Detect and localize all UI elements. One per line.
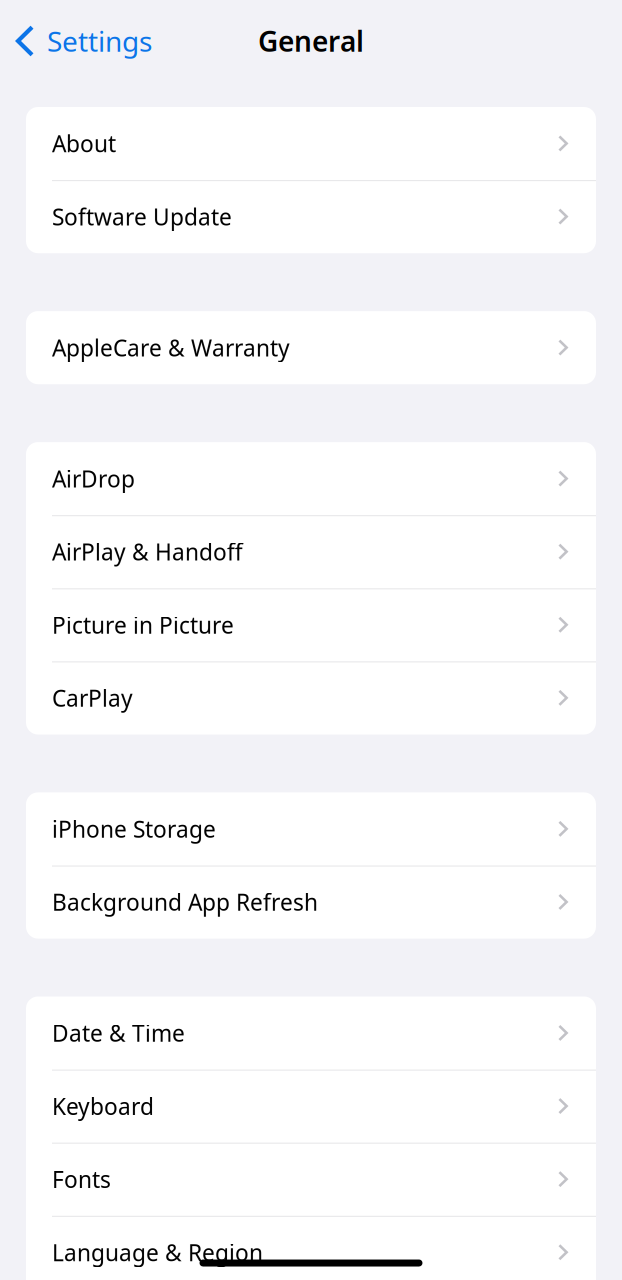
staticText: iPhone Storage: [52, 814, 216, 844]
staticText: Picture in Picture: [52, 610, 234, 640]
staticText: AppleCare & Warranty: [52, 333, 290, 363]
staticText: CarPlay: [52, 683, 133, 713]
button[interactable]: Picture in Picture: [26, 588, 596, 661]
button[interactable]: AppleCare & Warranty: [26, 311, 596, 384]
button[interactable]: Language & Region: [26, 1216, 596, 1280]
button[interactable]: AirPlay & Handoff: [26, 515, 596, 588]
button[interactable]: Settings: [0, 12, 152, 70]
button[interactable]: About: [26, 107, 596, 180]
staticText: Software Update: [52, 202, 232, 232]
button[interactable]: Fonts: [26, 1143, 596, 1216]
staticText: About: [52, 128, 116, 159]
button[interactable]: iPhone Storage: [26, 792, 596, 865]
button[interactable]: Software Update: [26, 180, 596, 253]
button[interactable]: Keyboard: [26, 1070, 596, 1143]
button[interactable]: AirDrop: [26, 442, 596, 515]
staticText: Background App Refresh: [52, 887, 318, 917]
button[interactable]: Background App Refresh: [26, 865, 596, 939]
button[interactable]: Date & Time: [26, 996, 596, 1070]
button[interactable]: CarPlay: [26, 661, 596, 734]
staticText: General: [258, 22, 364, 60]
staticText: AirPlay & Handoff: [52, 537, 243, 567]
staticText: Fonts: [52, 1164, 111, 1194]
staticText: AirDrop: [52, 464, 135, 494]
staticText: Keyboard: [52, 1091, 154, 1121]
staticText: Language & Region: [52, 1237, 263, 1267]
staticText: Date & Time: [52, 1018, 185, 1048]
staticText: Settings: [47, 22, 152, 60]
